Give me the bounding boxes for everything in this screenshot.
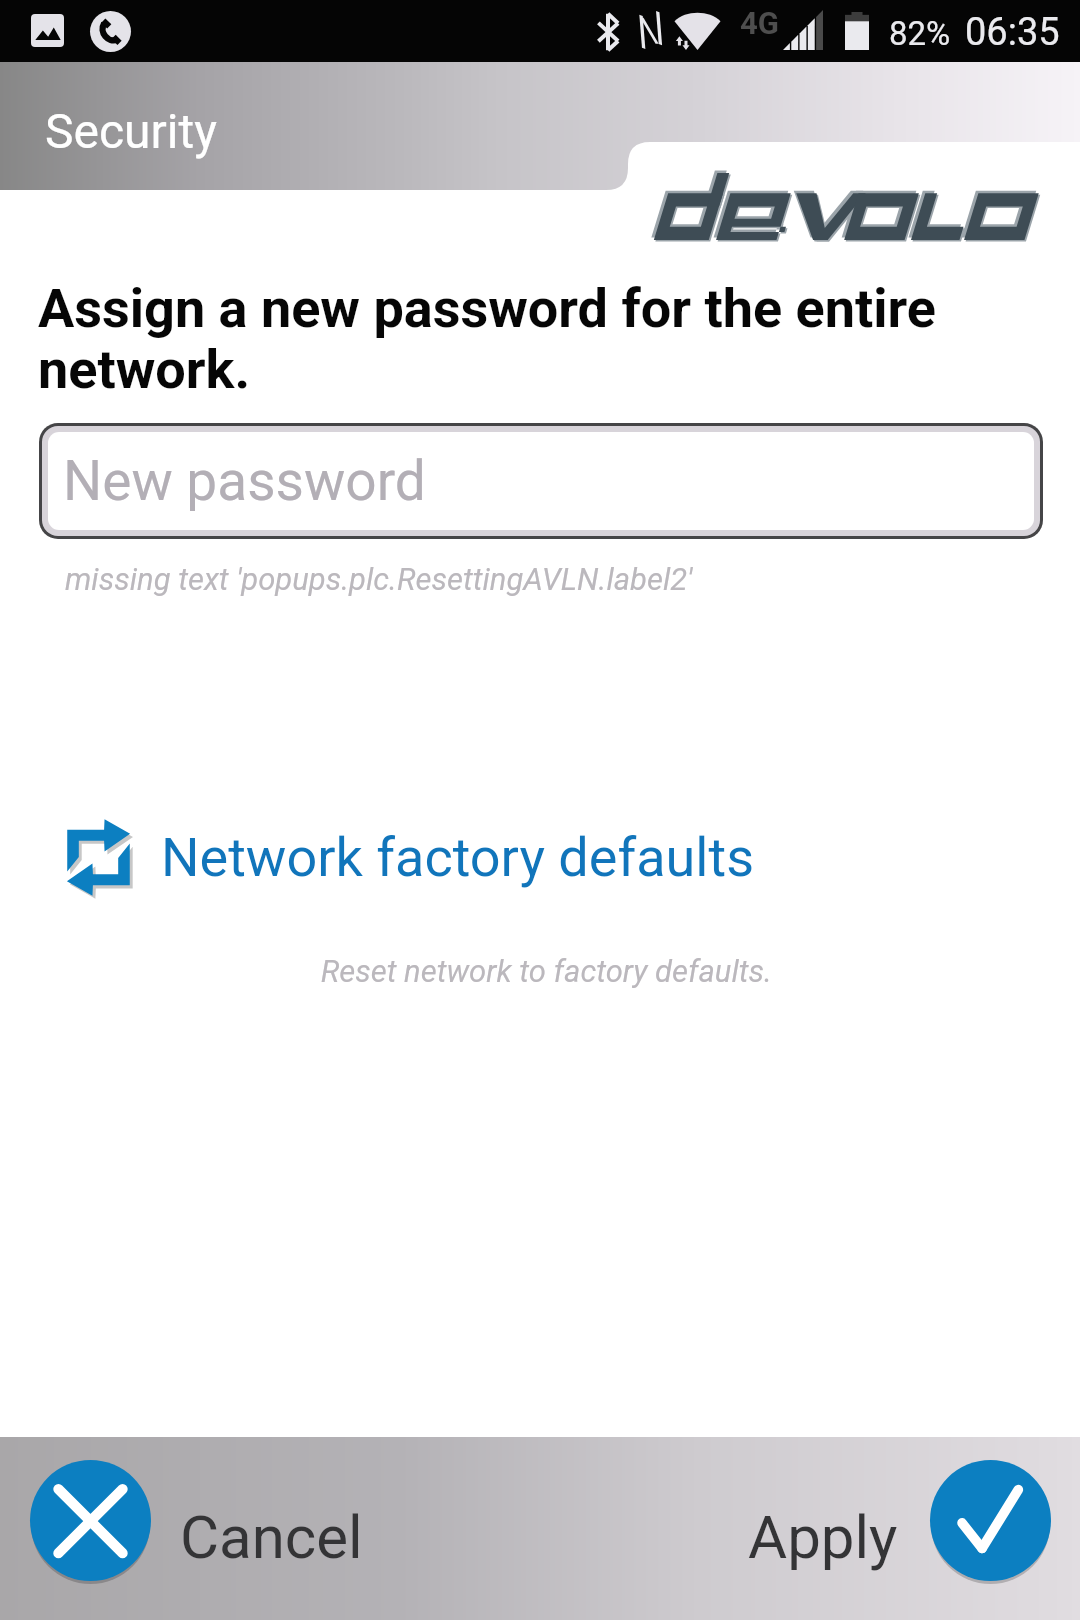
staticText: Apply [748,1502,898,1572]
other: Cancel [30,1460,151,1581]
other: Apply [930,1460,1051,1581]
staticText: Reset network to factory defaults. [0,953,772,989]
staticText: Security [45,103,217,159]
button[interactable]: Network factory defaults [66,819,754,896]
staticText: 06:35 [965,10,1060,55]
staticText: New password [63,449,426,513]
button[interactable]: New password [39,423,1043,539]
staticText: Network factory defaults [161,826,754,889]
staticText: missing text 'popups.plc.ResettingAVLN.l… [65,561,693,597]
staticText: 82% [889,14,951,53]
button[interactable]: Apply [748,1460,1051,1581]
staticText: Assign a new password for the entire net… [38,277,958,401]
staticText: 4G [740,5,779,41]
button[interactable]: Cancel [30,1460,363,1581]
staticText: Cancel [180,1502,363,1572]
